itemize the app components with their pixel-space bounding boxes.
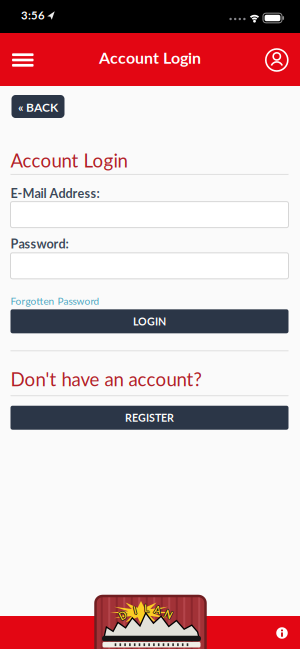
- staticText: L: [144, 603, 149, 615]
- button[interactable]: [266, 49, 288, 71]
- button[interactable]: REGISTER: [10, 406, 288, 430]
- button[interactable]: « BACK: [11, 95, 64, 118]
- staticText: I: [133, 604, 136, 616]
- staticText: L: [144, 602, 149, 614]
- staticText: Account Login: [10, 149, 127, 171]
- staticText: N: [164, 608, 172, 620]
- staticText: N: [164, 609, 172, 621]
- staticText: D: [119, 609, 127, 621]
- staticText: A: [154, 603, 161, 615]
- staticText: D: [118, 609, 126, 621]
- staticText: A: [155, 604, 162, 616]
- button[interactable]: [275, 626, 289, 640]
- staticText: Account Login: [99, 48, 201, 67]
- staticText: L: [143, 602, 148, 614]
- staticText: REGISTER: [125, 411, 174, 424]
- staticText: N: [164, 608, 172, 620]
- staticText: A: [154, 605, 161, 617]
- staticText: I: [134, 604, 137, 616]
- staticText: Don't have an account?: [10, 368, 201, 390]
- staticText: D: [120, 609, 128, 621]
- staticText: A: [154, 604, 161, 616]
- staticText: LOGIN: [133, 315, 166, 328]
- staticText: « BACK: [18, 100, 58, 114]
- staticText: 3:56: [21, 8, 45, 22]
- staticText: L: [145, 602, 150, 614]
- staticText: N: [164, 608, 172, 620]
- staticText: A: [153, 604, 160, 616]
- staticText: D: [119, 610, 127, 622]
- staticText: D: [119, 609, 127, 621]
- staticText: N: [165, 608, 173, 620]
- staticText: Password:: [10, 236, 68, 251]
- button[interactable]: LOGIN: [10, 309, 288, 333]
- staticText: E-Mail Address:: [10, 185, 99, 201]
- staticText: Forgotten Password: [10, 295, 99, 307]
- staticText: I: [133, 604, 136, 616]
- staticText: L: [144, 602, 149, 614]
- staticText: I: [133, 605, 136, 617]
- staticText: I: [133, 604, 136, 616]
- button[interactable]: [12, 53, 34, 67]
- button[interactable]: Forgotten Password: [10, 295, 99, 307]
